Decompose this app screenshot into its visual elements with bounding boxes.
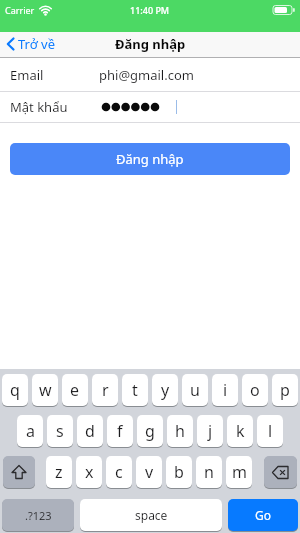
staticText: s bbox=[56, 420, 64, 442]
staticText: q bbox=[10, 379, 20, 401]
button[interactable]: g bbox=[137, 415, 163, 447]
staticText: Go bbox=[255, 507, 271, 523]
button[interactable]: x bbox=[76, 456, 102, 488]
button[interactable]: .?123 bbox=[2, 499, 74, 531]
staticText: i bbox=[223, 379, 228, 401]
staticText: g bbox=[145, 420, 155, 442]
staticText: Mật khẩu bbox=[10, 98, 68, 116]
button[interactable]: w bbox=[32, 374, 58, 406]
button[interactable]: space bbox=[80, 499, 222, 531]
staticText: j bbox=[208, 420, 213, 442]
button[interactable]: h bbox=[167, 415, 193, 447]
staticText: Đăng nhập bbox=[116, 150, 184, 168]
staticText: u bbox=[190, 379, 200, 401]
staticText: h bbox=[175, 420, 185, 442]
button[interactable]: p bbox=[272, 374, 298, 406]
staticText: f bbox=[117, 420, 123, 442]
button[interactable]: d bbox=[77, 415, 103, 447]
staticText: t bbox=[132, 379, 138, 401]
button[interactable]: c bbox=[106, 456, 132, 488]
button[interactable] bbox=[264, 456, 297, 488]
button[interactable]: q bbox=[2, 374, 28, 406]
staticText: d bbox=[85, 420, 95, 442]
staticText: y bbox=[161, 379, 170, 401]
staticText: x bbox=[85, 461, 94, 483]
staticText: p bbox=[280, 379, 290, 401]
staticText: n bbox=[204, 461, 214, 483]
button[interactable]: f bbox=[107, 415, 133, 447]
button[interactable]: t bbox=[122, 374, 148, 406]
button[interactable]: k bbox=[227, 415, 253, 447]
button[interactable]: l bbox=[257, 415, 283, 447]
button[interactable]: u bbox=[182, 374, 208, 406]
staticText: space bbox=[135, 507, 168, 523]
staticText: Trở về bbox=[18, 35, 56, 53]
staticText: r bbox=[102, 379, 109, 401]
staticText: Email bbox=[10, 66, 44, 84]
staticText: z bbox=[55, 461, 63, 483]
staticText: l bbox=[268, 420, 273, 442]
staticText: Đăng nhập bbox=[115, 35, 186, 53]
button[interactable]: v bbox=[136, 456, 162, 488]
button[interactable]: z bbox=[46, 456, 72, 488]
button[interactable]: a bbox=[17, 415, 43, 447]
button[interactable]: m bbox=[226, 456, 252, 488]
staticText: b bbox=[174, 461, 184, 483]
staticText: m bbox=[232, 461, 247, 483]
button[interactable]: n bbox=[196, 456, 222, 488]
button[interactable]: Trở về bbox=[6, 35, 56, 53]
button[interactable]: y bbox=[152, 374, 178, 406]
button[interactable]: Đăng nhập bbox=[10, 143, 290, 175]
staticText: e bbox=[70, 379, 80, 401]
staticText: phi@gmail.com bbox=[99, 66, 194, 84]
button[interactable]: r bbox=[92, 374, 118, 406]
button[interactable]: b bbox=[166, 456, 192, 488]
button[interactable]: i bbox=[212, 374, 238, 406]
staticText: v bbox=[145, 461, 154, 483]
staticText: w bbox=[39, 379, 52, 401]
button[interactable]: Go bbox=[228, 499, 298, 531]
button[interactable]: s bbox=[47, 415, 73, 447]
button[interactable]: Email bbox=[0, 58, 300, 91]
staticText: Carrier bbox=[5, 4, 35, 16]
staticText: .?123 bbox=[25, 508, 52, 523]
staticText: 11:40 PM bbox=[130, 4, 170, 16]
staticText: k bbox=[236, 420, 245, 442]
staticText: c bbox=[115, 461, 123, 483]
button[interactable]: o bbox=[242, 374, 268, 406]
button[interactable]: j bbox=[197, 415, 223, 447]
staticText: o bbox=[250, 379, 260, 401]
button[interactable]: e bbox=[62, 374, 88, 406]
button[interactable] bbox=[3, 456, 35, 488]
button[interactable]: Mật khẩu bbox=[0, 92, 300, 122]
staticText: a bbox=[26, 420, 35, 442]
